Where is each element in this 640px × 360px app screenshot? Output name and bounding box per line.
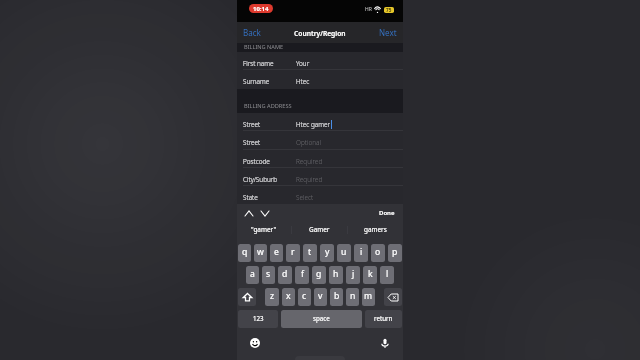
button[interactable]: e xyxy=(270,244,283,262)
button[interactable]: Back xyxy=(237,23,267,42)
staticText: Htec xyxy=(296,77,310,86)
staticText: u xyxy=(341,246,347,258)
button[interactable]: q xyxy=(238,244,251,262)
staticText: Required xyxy=(296,157,323,166)
button[interactable]: m xyxy=(362,288,375,306)
button[interactable]: a xyxy=(246,266,259,284)
staticText: Your xyxy=(296,59,310,68)
button[interactable]: Next field xyxy=(258,207,271,220)
button[interactable]: Shift xyxy=(238,288,256,306)
button[interactable]: Postcode xyxy=(237,150,403,168)
button[interactable]: gamers xyxy=(348,221,403,238)
staticText: HR xyxy=(365,6,372,13)
button[interactable]: h xyxy=(329,266,343,284)
button[interactable]: n xyxy=(346,288,359,306)
button[interactable]: t xyxy=(303,244,317,262)
staticText: Gamer xyxy=(309,225,330,234)
button[interactable]: First name xyxy=(237,52,403,70)
staticText: Street xyxy=(243,120,261,129)
button[interactable]: o xyxy=(371,244,385,262)
staticText: r xyxy=(291,246,295,258)
button[interactable]: return xyxy=(365,310,402,328)
staticText: h xyxy=(333,268,339,280)
staticText: l xyxy=(386,268,389,280)
staticText: o xyxy=(375,246,381,258)
button[interactable]: Dictate xyxy=(378,336,392,350)
button[interactable]: 123 xyxy=(238,310,278,328)
staticText: k xyxy=(368,268,373,280)
staticText: g xyxy=(316,268,322,280)
staticText: Country/Region xyxy=(294,29,346,38)
staticText: return xyxy=(374,314,393,322)
button[interactable]: State xyxy=(237,186,403,204)
staticText: w xyxy=(257,246,264,258)
staticText: c xyxy=(302,290,307,302)
button[interactable]: p xyxy=(388,244,402,262)
staticText: s xyxy=(266,268,271,280)
button[interactable]: space xyxy=(281,310,362,328)
staticText: Done xyxy=(379,209,395,217)
staticText: Required xyxy=(296,175,323,184)
staticText: y xyxy=(325,246,330,258)
staticText: Next xyxy=(379,27,397,38)
button[interactable]: w xyxy=(254,244,267,262)
staticText: i xyxy=(360,246,363,258)
staticText: Back xyxy=(243,27,261,38)
button[interactable]: x xyxy=(282,288,295,306)
staticText: space xyxy=(313,314,330,322)
staticText: j xyxy=(352,268,355,280)
staticText: f xyxy=(301,268,304,280)
staticText: b xyxy=(334,290,340,302)
staticText: q xyxy=(242,246,248,258)
button[interactable]: u xyxy=(337,244,351,262)
staticText: Surname xyxy=(243,77,270,86)
staticText: City/Suburb xyxy=(243,175,278,184)
button[interactable]: Street xyxy=(237,113,403,131)
staticText: "gamer" xyxy=(251,225,277,234)
staticText: e xyxy=(274,246,279,258)
staticText: 10:14 xyxy=(253,5,269,13)
button[interactable]: Emoji xyxy=(248,336,262,350)
staticText: State xyxy=(243,193,258,202)
staticText: v xyxy=(318,290,323,302)
staticText: Street xyxy=(243,138,261,147)
staticText: 75 xyxy=(386,7,392,13)
button[interactable]: i xyxy=(354,244,368,262)
staticText: Htec gamer xyxy=(296,120,331,129)
button[interactable]: Surname xyxy=(237,70,403,89)
button[interactable]: City/Suburb xyxy=(237,168,403,186)
button[interactable]: f xyxy=(295,266,309,284)
button[interactable]: Previous field xyxy=(242,207,255,220)
button[interactable]: c xyxy=(298,288,311,306)
button[interactable]: "gamer" xyxy=(237,221,291,238)
button[interactable]: l xyxy=(380,266,394,284)
button[interactable]: d xyxy=(278,266,292,284)
button[interactable]: Backspace xyxy=(384,288,402,306)
staticText: n xyxy=(350,290,356,302)
staticText: First name xyxy=(243,59,274,68)
button[interactable]: Done xyxy=(371,206,403,220)
button[interactable]: y xyxy=(320,244,334,262)
staticText: z xyxy=(270,290,275,302)
staticText: 123 xyxy=(253,314,264,322)
staticText: Optional xyxy=(296,138,321,147)
staticText: m xyxy=(364,290,373,302)
button[interactable]: k xyxy=(363,266,377,284)
button[interactable]: Street xyxy=(237,131,403,150)
button[interactable]: Gamer xyxy=(292,221,347,238)
staticText: d xyxy=(282,268,288,280)
staticText: Select xyxy=(296,193,314,202)
staticText: x xyxy=(286,290,291,302)
button[interactable]: g xyxy=(312,266,326,284)
staticText: Postcode xyxy=(243,157,270,166)
button[interactable]: s xyxy=(262,266,275,284)
button[interactable]: j xyxy=(346,266,360,284)
staticText: t xyxy=(308,246,312,258)
staticText: BILLING ADDRESS xyxy=(244,102,292,110)
button[interactable]: r xyxy=(286,244,300,262)
button[interactable]: z xyxy=(265,288,279,306)
button[interactable]: v xyxy=(314,288,327,306)
staticText: p xyxy=(392,246,398,258)
button[interactable]: Next xyxy=(373,23,403,42)
button[interactable]: b xyxy=(330,288,343,306)
